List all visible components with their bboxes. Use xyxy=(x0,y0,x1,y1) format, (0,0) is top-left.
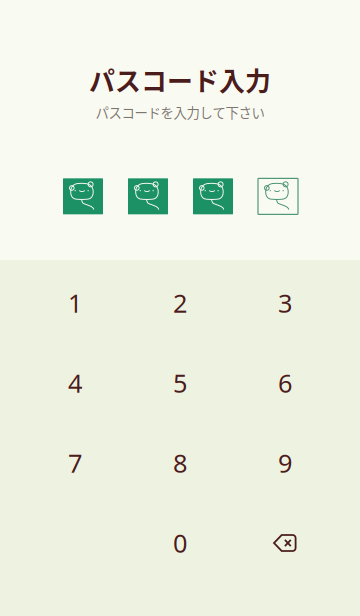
button[interactable]: 2 xyxy=(127,263,232,343)
button[interactable]: 4 xyxy=(22,343,127,423)
button[interactable]: 9 xyxy=(232,423,337,503)
button[interactable]: 5 xyxy=(127,343,232,423)
staticText: パスコードを入力して下さい xyxy=(95,102,264,122)
button[interactable]: 3 xyxy=(232,263,337,343)
staticText: パスコード入力 xyxy=(89,61,271,98)
button[interactable]: 7 xyxy=(22,423,127,503)
button[interactable]: 0 xyxy=(127,503,232,583)
staticText: 3 xyxy=(278,286,292,320)
button[interactable]: 6 xyxy=(232,343,337,423)
button[interactable]: Delete xyxy=(232,503,337,583)
staticText: 5 xyxy=(173,366,187,400)
staticText: 8 xyxy=(173,446,187,480)
button[interactable]: 8 xyxy=(127,423,232,503)
staticText: 4 xyxy=(68,366,82,400)
staticText: 9 xyxy=(278,446,292,480)
staticText: 6 xyxy=(278,366,292,400)
staticText: 1 xyxy=(68,286,82,320)
button[interactable]: 1 xyxy=(22,263,127,343)
staticText: 0 xyxy=(173,526,187,560)
staticText: 7 xyxy=(68,446,82,480)
staticText: 2 xyxy=(173,286,187,320)
